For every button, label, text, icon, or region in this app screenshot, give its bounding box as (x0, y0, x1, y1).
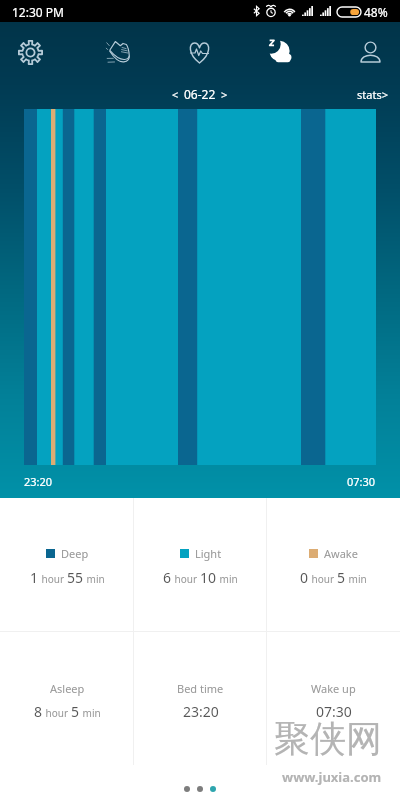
button[interactable]: Wake up (267, 632, 400, 765)
staticText: Asleep (50, 681, 85, 696)
staticText: 07:30 (347, 474, 376, 489)
button[interactable]: Profile (342, 24, 398, 80)
staticText: 6 (163, 568, 172, 587)
button[interactable]: Bed time (134, 632, 267, 765)
staticText: hour (43, 706, 71, 720)
staticText: 12:30 PM (12, 4, 64, 20)
button[interactable]: Light (134, 498, 267, 631)
button[interactable]: Heart rate (171, 24, 227, 80)
staticText: 07:30 (316, 702, 352, 721)
staticText: 48% (364, 4, 388, 20)
staticText: 5 (337, 568, 346, 587)
staticText: min (80, 706, 101, 720)
staticText: www.juxia.com (282, 768, 382, 786)
staticText: 55 (67, 568, 84, 587)
staticText: Wake up (311, 681, 356, 696)
staticText: Deep (61, 546, 89, 561)
staticText: min (346, 572, 367, 586)
staticText: min (84, 572, 105, 586)
staticText: 23:20 (24, 474, 53, 489)
staticText: > (221, 87, 228, 102)
staticText: 06-22 (184, 86, 216, 102)
button[interactable]: Asleep (0, 632, 134, 765)
staticText: hour (309, 572, 337, 586)
staticText: 0 (300, 568, 309, 587)
staticText: 8 (34, 702, 43, 721)
button[interactable]: Awake (267, 498, 400, 631)
staticText: 23:20 (183, 702, 219, 721)
staticText: 5 (71, 702, 80, 721)
button[interactable]: Deep (0, 498, 134, 631)
button[interactable]: Settings (2, 24, 58, 80)
staticText: 10 (200, 568, 217, 587)
staticText: hour (39, 572, 67, 586)
button[interactable]: < (172, 86, 228, 102)
button[interactable]: Steps (91, 24, 147, 80)
staticText: min (217, 572, 238, 586)
staticText: 1 (30, 568, 39, 587)
staticText: Light (195, 546, 222, 561)
staticText: < (172, 87, 179, 102)
staticText: hour (172, 572, 200, 586)
staticText: 聚侠网 (274, 716, 382, 761)
button[interactable]: Sleep (251, 24, 307, 80)
button[interactable]: stats> (357, 87, 388, 102)
staticText: Awake (324, 546, 358, 561)
staticText: Bed time (177, 681, 224, 696)
